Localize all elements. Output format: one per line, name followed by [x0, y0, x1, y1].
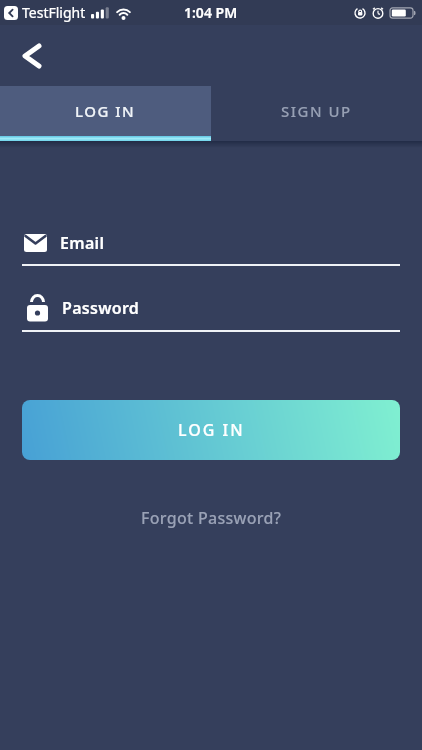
staticText: 1:04 PM	[184, 3, 238, 22]
staticText: SIGN UP	[281, 101, 352, 121]
button[interactable]: SIGN UP	[211, 86, 422, 136]
button[interactable]	[20, 43, 44, 67]
staticText: LOG IN	[75, 101, 136, 121]
button[interactable]: LOG IN	[0, 86, 211, 136]
staticText: Email	[60, 232, 105, 254]
button[interactable]: Email	[24, 231, 422, 255]
button[interactable]: Password	[27, 294, 422, 322]
staticText: Password	[62, 297, 140, 319]
button[interactable]: LOG IN	[22, 400, 400, 460]
staticText: LOG IN	[178, 419, 245, 441]
button[interactable]: Forgot Password?	[141, 507, 282, 529]
staticText: TestFlight	[22, 3, 86, 22]
